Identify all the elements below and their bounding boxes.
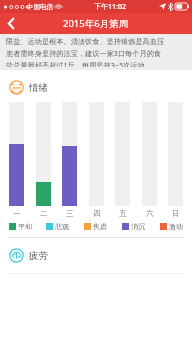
staticText: 情绪: [29, 82, 48, 94]
button[interactable]: [62, 102, 77, 206]
staticText: 二: [40, 209, 48, 218]
staticText: 患者需终身坚持的法宝，建议一家3口每个月的食: [6, 48, 162, 58]
button[interactable]: Mood: [9, 80, 192, 95]
staticText: 限盐、运动是根本。清淡饮食、坚持锻炼是高血压: [6, 37, 165, 46]
button[interactable]: Back: [0, 13, 22, 34]
staticText: 五: [119, 209, 127, 218]
button[interactable]: Fatigue: [9, 248, 192, 263]
staticText: 一: [13, 209, 21, 218]
staticText: 2015年6月第周: [63, 17, 129, 30]
staticText: 平和: [18, 222, 32, 231]
button[interactable]: 消沉: [122, 222, 145, 231]
button[interactable]: [9, 102, 24, 206]
button[interactable]: [36, 102, 51, 206]
button[interactable]: 焦虑: [84, 222, 107, 231]
staticText: 三: [66, 209, 74, 218]
staticText: 悲观: [55, 222, 69, 231]
staticText: 焦虑: [93, 222, 107, 231]
button[interactable]: 平和: [9, 222, 32, 231]
staticText: 激动: [169, 222, 183, 231]
staticText: 下午11:02: [94, 2, 126, 12]
staticText: 中国电信: [27, 3, 53, 11]
staticText: 四: [93, 209, 101, 218]
button[interactable]: 悲观: [46, 222, 69, 231]
staticText: 日: [172, 209, 180, 218]
button[interactable]: 激动: [160, 222, 183, 231]
other: Mood: [9, 80, 24, 95]
staticText: 盐总量最好不超过1斤，每周坚持3~5次运动。: [6, 60, 152, 67]
staticText: 疲劳: [29, 250, 48, 262]
staticText: 六: [146, 209, 154, 218]
staticText: 消沉: [131, 222, 145, 231]
other: Fatigue: [9, 248, 24, 263]
